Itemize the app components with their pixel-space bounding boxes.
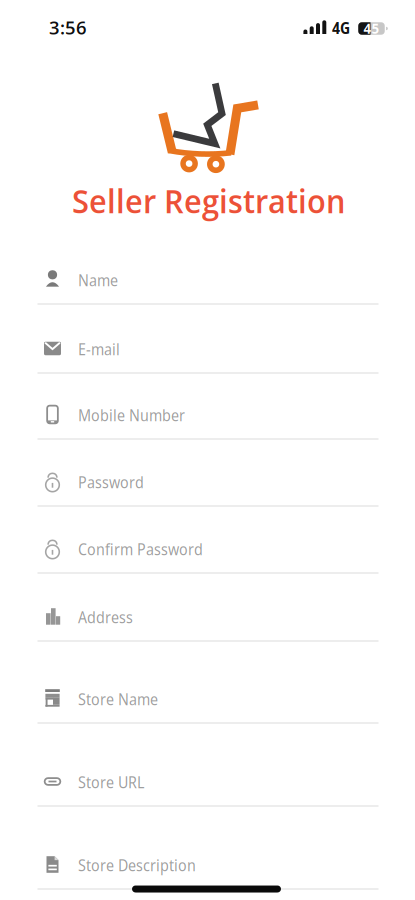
- button[interactable]: Store URL: [0, 756, 415, 806]
- staticText: Mobile Number: [78, 405, 185, 426]
- button[interactable]: Confirm Password: [0, 523, 415, 573]
- staticText: Password: [78, 472, 144, 493]
- staticText: 4G: [332, 18, 350, 38]
- staticText: Seller Registration: [72, 178, 346, 223]
- staticText: Name: [78, 270, 118, 291]
- button[interactable]: Store Name: [0, 673, 415, 723]
- staticText: E-mail: [78, 339, 120, 360]
- button[interactable]: Password: [0, 456, 415, 506]
- staticText: Store Name: [78, 689, 158, 710]
- button[interactable]: Store Description: [0, 839, 415, 889]
- button[interactable]: Mobile Number: [0, 389, 415, 439]
- staticText: Confirm Password: [78, 539, 203, 560]
- button[interactable]: E-mail: [0, 323, 415, 373]
- button[interactable]: Name: [0, 254, 415, 304]
- staticText: 45: [363, 19, 379, 38]
- staticText: 3:56: [49, 15, 87, 40]
- staticText: Store Description: [78, 855, 196, 876]
- button[interactable]: Address: [0, 591, 415, 641]
- staticText: Address: [78, 607, 133, 628]
- staticText: Store URL: [78, 772, 144, 793]
